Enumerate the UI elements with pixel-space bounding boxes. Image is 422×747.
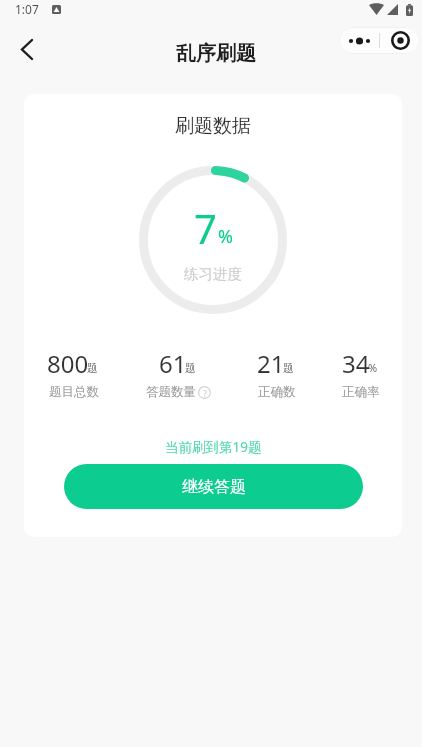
staticText: 题 — [87, 361, 98, 375]
staticText: 题 — [283, 361, 294, 375]
staticText: 练习进度 — [184, 265, 242, 283]
button[interactable]: Close mini program — [380, 27, 420, 54]
staticText: 乱序刷题 — [176, 41, 256, 66]
staticText: % — [218, 224, 233, 249]
button[interactable]: Help — [198, 386, 211, 399]
button[interactable]: Back — [5, 27, 49, 71]
staticText: 题目总数 — [49, 384, 99, 400]
staticText: 61 — [159, 347, 187, 380]
staticText: 34 — [342, 347, 370, 380]
staticText: 继续答题 — [182, 477, 246, 497]
staticText: 刷题数据 — [175, 114, 251, 138]
staticText: 21 — [257, 347, 285, 380]
button[interactable]: 继续答题 — [64, 464, 363, 509]
staticText: 1:07 — [15, 1, 39, 17]
staticText: % — [368, 360, 378, 375]
staticText: 正确数 — [258, 384, 296, 400]
staticText: 当前刷到第19题 — [165, 438, 262, 456]
staticText: 800 — [47, 347, 89, 380]
staticText: 题 — [185, 361, 196, 375]
staticText: 7 — [194, 201, 217, 255]
staticText: 答题数量 — [146, 384, 196, 400]
button[interactable]: More options — [339, 27, 379, 54]
staticText: ? — [203, 387, 207, 399]
staticText: 正确率 — [342, 384, 380, 400]
